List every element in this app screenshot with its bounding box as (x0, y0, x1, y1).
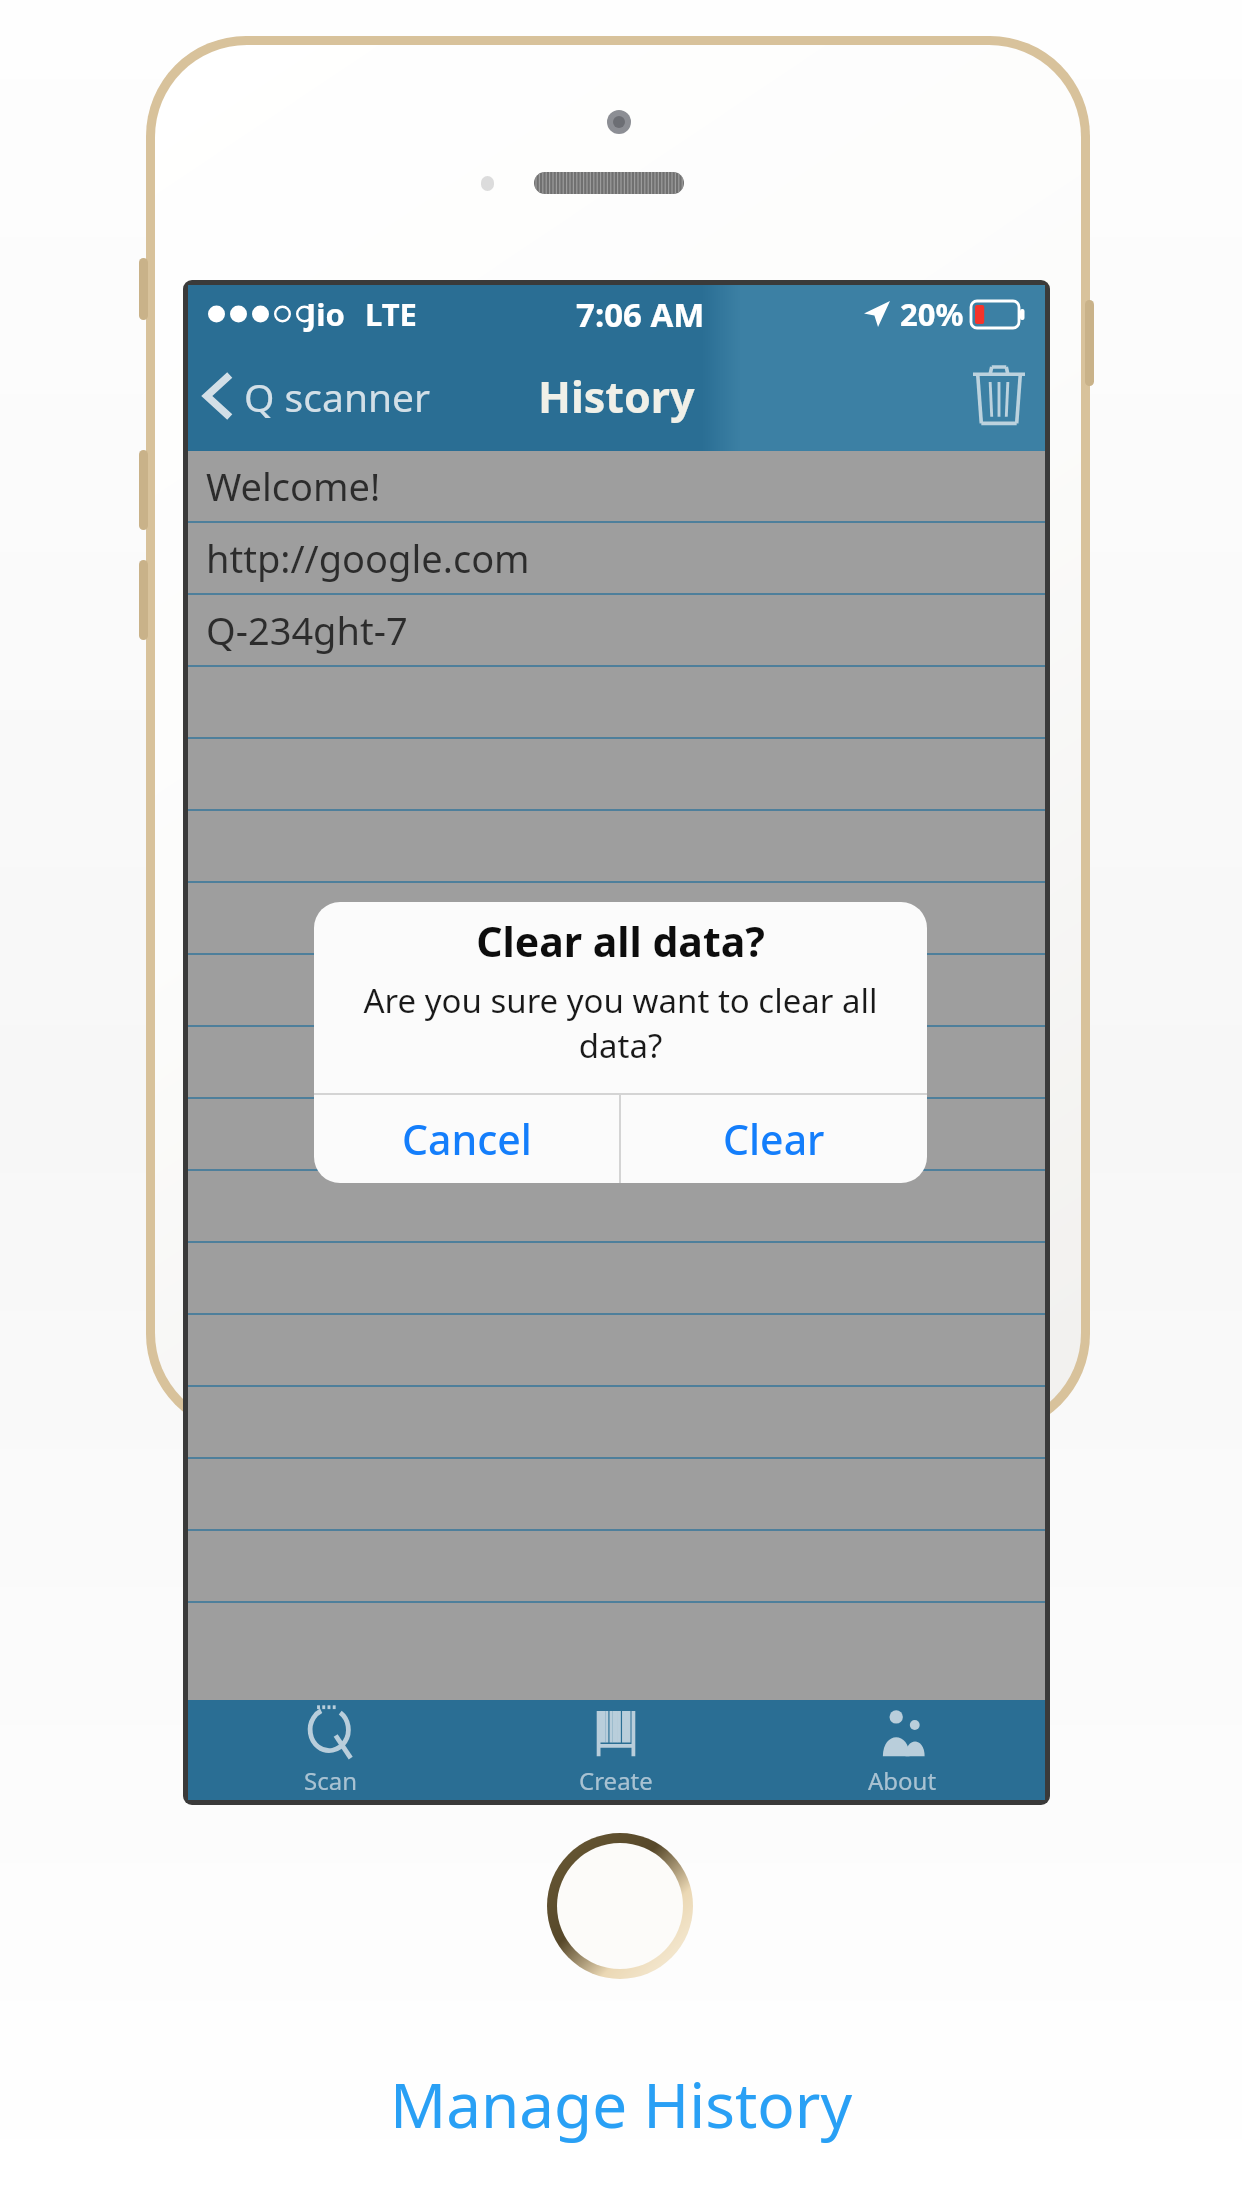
staticText: Clear (723, 1111, 825, 1167)
button[interactable] (188, 1171, 1045, 1243)
button[interactable]: Cancel (314, 1095, 619, 1183)
staticText: About (868, 1764, 937, 1797)
button[interactable] (188, 1459, 1045, 1531)
staticText: Welcome! (206, 460, 381, 512)
staticText: http://google.com (206, 532, 530, 584)
staticText: Are you sure you want to clear all data? (326, 978, 915, 1068)
button[interactable]: Clear (621, 1095, 927, 1183)
staticText: Jio (306, 293, 345, 335)
staticText: Q-234ght-7 (206, 604, 408, 656)
staticText: Manage History (390, 2062, 853, 2146)
button[interactable] (188, 1027, 1045, 1099)
staticText: 7:06 AM (576, 292, 705, 337)
button[interactable]: About (759, 1700, 1045, 1800)
button[interactable]: http://google.com (188, 523, 1045, 595)
button[interactable] (188, 1243, 1045, 1315)
button[interactable] (188, 1099, 1045, 1171)
staticText: Create (579, 1764, 653, 1797)
button[interactable]: Welcome! (188, 451, 1045, 523)
button[interactable]: Clear all data (953, 348, 1045, 440)
staticText: Cancel (402, 1111, 532, 1167)
button[interactable]: Q scanner (188, 352, 447, 440)
button[interactable]: Q-234ght-7 (188, 595, 1045, 667)
staticText: Q scanner (244, 370, 431, 423)
button[interactable] (188, 1315, 1045, 1387)
button[interactable] (188, 883, 1045, 955)
button[interactable] (188, 667, 1045, 739)
button[interactable] (188, 1387, 1045, 1459)
staticText: Clear all data? (476, 913, 765, 969)
staticText: History (538, 367, 695, 426)
button[interactable] (188, 955, 1045, 1027)
staticText: 20% (900, 293, 964, 335)
button[interactable] (188, 739, 1045, 811)
button[interactable]: Create (473, 1700, 759, 1800)
staticText: LTE (365, 293, 417, 335)
button[interactable] (188, 1531, 1045, 1603)
staticText: Scan (304, 1764, 357, 1797)
button[interactable] (188, 811, 1045, 883)
button[interactable]: Scan (188, 1700, 473, 1800)
